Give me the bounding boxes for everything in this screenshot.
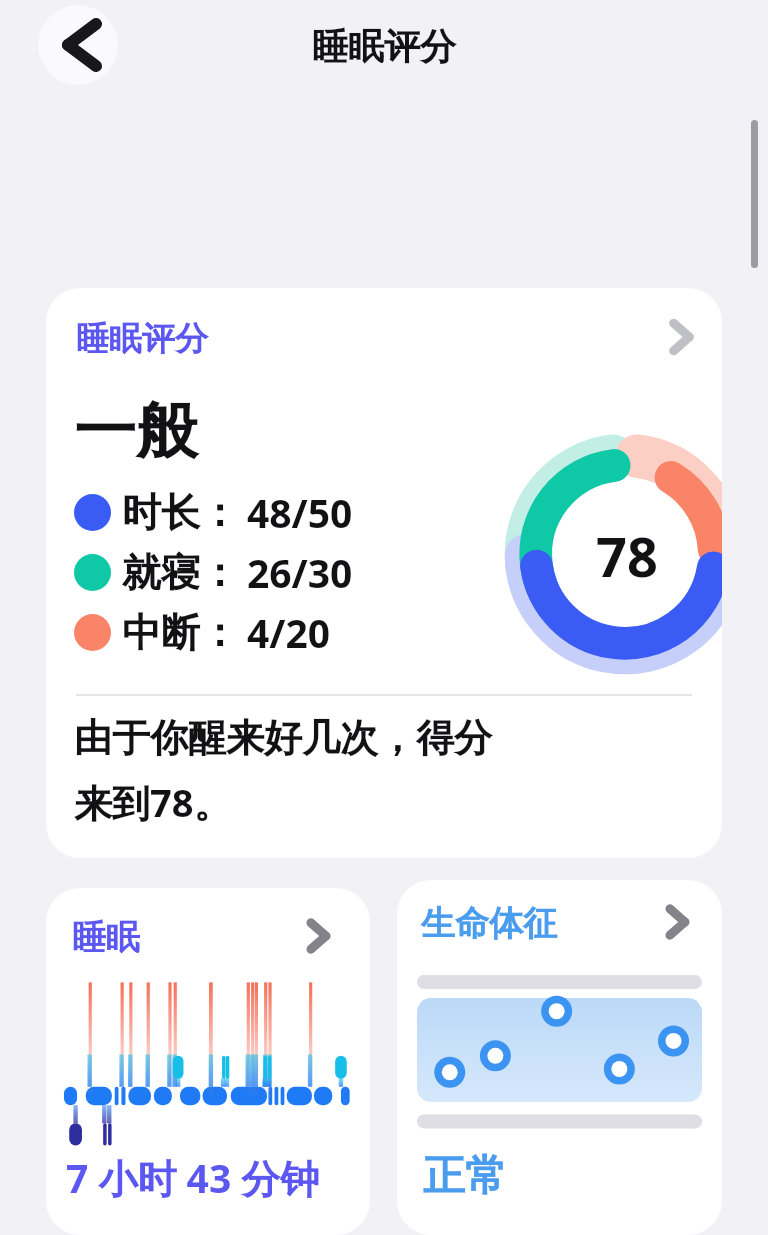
staticText: 睡眠评分 xyxy=(76,318,208,360)
staticText: 时长： xyxy=(122,488,239,537)
staticText: 就寝： xyxy=(122,548,239,597)
staticText: 睡眠评分 xyxy=(312,24,456,69)
staticText: 26/30 xyxy=(247,546,353,599)
button[interactable]: 生命体征 xyxy=(397,880,722,1235)
button[interactable]: Open sleep score xyxy=(658,314,704,360)
staticText: 78 xyxy=(596,519,658,593)
staticText: 正常 xyxy=(423,1150,507,1203)
staticText: 中断： xyxy=(122,608,239,657)
staticText: 睡眠 xyxy=(72,916,140,959)
staticText: 48/50 xyxy=(247,486,353,539)
button[interactable]: Back xyxy=(38,5,118,85)
staticText: 7 小时 43 分钟 xyxy=(66,1151,320,1204)
button[interactable]: Open vitals xyxy=(655,900,699,944)
button[interactable]: 睡眠 xyxy=(46,888,370,1235)
staticText: 由于你醒来好几次，得分 来到78。 xyxy=(74,714,704,829)
staticText: 一般 xyxy=(74,392,198,470)
button[interactable]: 睡眠评分 xyxy=(46,288,722,858)
button[interactable]: Open sleep xyxy=(296,914,340,958)
staticText: 生命体征 xyxy=(421,902,557,945)
staticText: 4/20 xyxy=(247,606,331,659)
